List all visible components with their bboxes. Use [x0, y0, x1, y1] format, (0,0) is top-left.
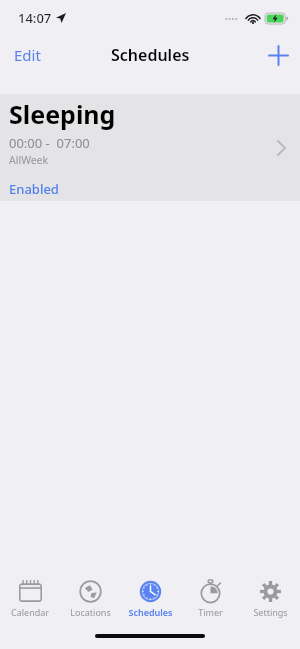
staticText: 14:07 — [18, 9, 52, 27]
staticText: Settings — [253, 606, 288, 618]
staticText: Sleeping — [9, 97, 116, 131]
staticText: AllWeek — [9, 153, 49, 167]
staticText: Calendar — [11, 606, 49, 618]
staticText: Timer — [198, 606, 223, 618]
button[interactable]: Add schedule — [257, 40, 300, 71]
button[interactable]: Calendar — [0, 570, 60, 628]
staticText: Schedules — [128, 606, 173, 618]
staticText: Locations — [70, 606, 111, 618]
button[interactable]: Locations — [60, 570, 120, 628]
button[interactable]: Schedules — [120, 570, 180, 628]
staticText: Schedules — [111, 44, 190, 66]
staticText: 00:00 - 07:00 — [9, 134, 90, 152]
button[interactable]: Settings — [240, 570, 300, 628]
button[interactable]: Sleeping — [0, 94, 300, 201]
button[interactable]: Edit — [0, 39, 55, 71]
button[interactable]: Timer — [180, 570, 240, 628]
staticText: Enabled — [9, 180, 59, 198]
staticText: Edit — [14, 45, 41, 65]
